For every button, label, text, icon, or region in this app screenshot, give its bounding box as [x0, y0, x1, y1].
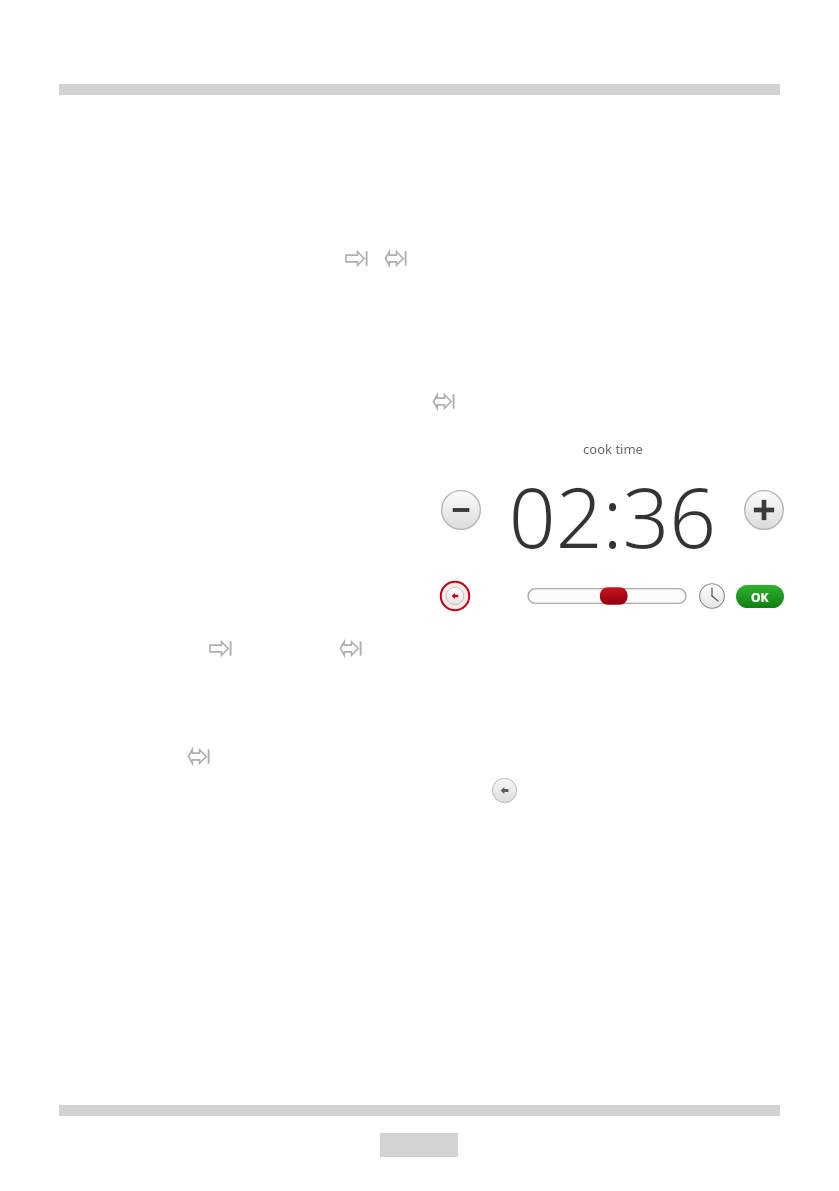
- staticText: cook time: [583, 440, 643, 458]
- button[interactable]: Back: [491, 777, 518, 804]
- button[interactable]: Cook time slider: [528, 587, 686, 605]
- staticText: 02:36: [482, 460, 743, 560]
- button[interactable]: OK: [736, 585, 784, 608]
- button[interactable]: Back: [440, 581, 470, 611]
- button[interactable]: Increase cook time: [743, 489, 785, 531]
- button[interactable]: Decrease cook time: [440, 489, 482, 531]
- button[interactable]: Timer: [698, 582, 726, 610]
- staticText: OK: [751, 589, 769, 605]
